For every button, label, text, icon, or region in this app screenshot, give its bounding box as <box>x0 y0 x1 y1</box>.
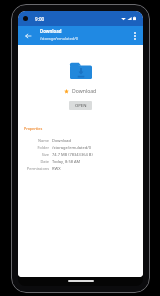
staticText: RWX <box>52 166 61 171</box>
staticText: Download <box>52 138 72 143</box>
staticText: Folder <box>18 145 49 150</box>
staticText: Today, 8:58 AM <box>52 159 81 164</box>
staticText: /storage/emulated/0 <box>40 36 78 41</box>
staticText: Download <box>40 28 62 34</box>
button[interactable]: Back <box>20 28 36 44</box>
staticText: Properties <box>24 126 43 131</box>
button[interactable]: OPEN <box>69 101 92 110</box>
staticText: Permissions <box>18 166 49 171</box>
staticText: 74.7 MB (78343364 B) <box>52 152 93 157</box>
staticText: Size <box>18 152 49 157</box>
staticText: OPEN <box>75 103 87 109</box>
staticText: Name <box>18 138 49 143</box>
staticText: Download <box>72 88 97 94</box>
staticText: 9:00 <box>35 16 45 22</box>
staticText: Date <box>18 159 49 164</box>
button[interactable]: More options <box>127 28 143 44</box>
staticText: /storage/emulated/0 <box>52 145 91 150</box>
